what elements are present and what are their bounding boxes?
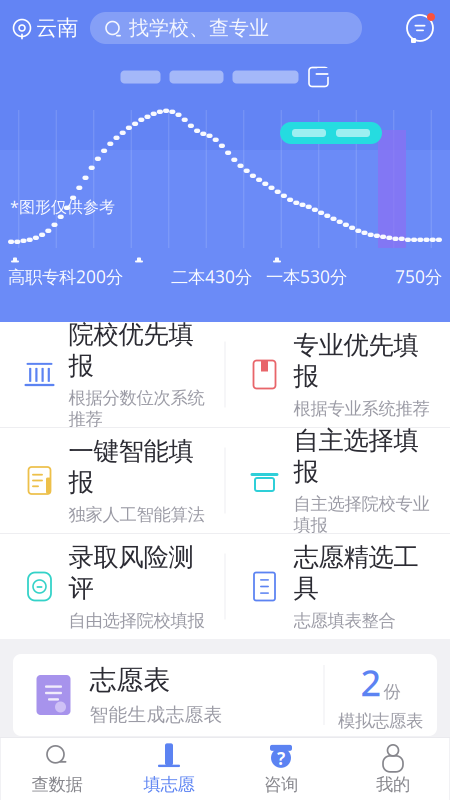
- staticText: 模拟志愿表: [338, 710, 423, 732]
- staticText: 一本530分: [266, 265, 347, 288]
- staticText: *图形仅供参考: [10, 196, 115, 217]
- staticText: 找学校、查专业: [129, 16, 269, 40]
- button[interactable]: 录取风险测评: [0, 534, 224, 639]
- button[interactable]: 专业优先填报: [225, 322, 449, 427]
- staticText: 一键智能填报: [68, 436, 193, 498]
- staticText: ?: [277, 747, 285, 770]
- button[interactable]: 云南: [0, 10, 84, 46]
- button[interactable]: 查数据: [1, 738, 113, 800]
- staticText: 自主选择填报: [293, 425, 418, 487]
- staticText: 云南: [36, 15, 78, 41]
- staticText: 志愿精选工具: [293, 542, 418, 604]
- staticText: 专业优先填报: [293, 330, 418, 392]
- staticText: 自主选择院校专业填报: [293, 493, 429, 536]
- staticText: 咨询: [264, 774, 298, 795]
- button[interactable]: ?: [225, 738, 337, 800]
- staticText: 院校优先填报: [68, 319, 193, 381]
- staticText: 根据分数位次系统推荐: [68, 387, 204, 430]
- staticText: 我的: [376, 774, 410, 795]
- staticText: 查数据: [31, 774, 82, 795]
- button[interactable]: 志愿表: [13, 654, 437, 736]
- staticText: 份: [383, 681, 400, 702]
- staticText: 二本430分: [171, 265, 252, 288]
- button[interactable]: 志愿精选工具: [225, 534, 449, 639]
- staticText: 录取风险测评: [68, 542, 193, 604]
- staticText: 填志愿: [143, 774, 194, 795]
- button[interactable]: 消息: [398, 6, 442, 50]
- button[interactable]: 找学校、查专业: [90, 12, 362, 44]
- staticText: 自由选择院校填报: [68, 610, 204, 631]
- staticText: 高职专科200分: [8, 265, 123, 288]
- staticText: 独家人工智能算法: [68, 504, 204, 525]
- button[interactable]: 一键智能填报: [0, 428, 224, 533]
- button[interactable]: 自主选择填报: [225, 428, 449, 533]
- staticText: 2: [360, 658, 381, 706]
- button[interactable]: 填志愿: [113, 738, 225, 800]
- button[interactable]: 院校优先填报: [0, 322, 224, 427]
- button[interactable]: [120, 62, 329, 92]
- staticText: 志愿表: [89, 664, 170, 696]
- button[interactable]: 我的: [337, 738, 449, 800]
- staticText: 750分: [395, 265, 442, 288]
- staticText: 根据专业系统推荐: [293, 398, 429, 419]
- staticText: 志愿填表整合: [293, 610, 395, 631]
- staticText: 智能生成志愿表: [89, 703, 222, 726]
